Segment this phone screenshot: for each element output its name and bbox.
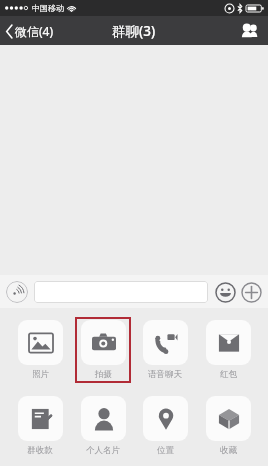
button[interactable]: Voice input: [6, 281, 28, 303]
staticText: 收藏: [220, 445, 237, 456]
staticText: 红包: [220, 369, 237, 380]
button[interactable]: 位置: [137, 393, 193, 459]
button[interactable]: 群收款: [12, 393, 68, 459]
button[interactable]: 语音聊天: [137, 317, 193, 383]
staticText: 个人名片: [86, 445, 120, 456]
button[interactable]: 个人名片: [75, 393, 131, 459]
staticText: 中国移动: [32, 3, 64, 13]
staticText: 群聊(3): [112, 22, 156, 40]
staticText: 群收款: [27, 445, 53, 456]
button[interactable]: 红包: [200, 317, 256, 383]
staticText: 位置: [157, 445, 174, 456]
button[interactable]: More: [240, 281, 262, 303]
button[interactable]: Group members: [231, 18, 268, 43]
button[interactable]: 照片: [12, 317, 68, 383]
button[interactable]: 收藏: [200, 393, 256, 459]
staticText: 拍摄: [95, 369, 112, 380]
button[interactable]: [34, 281, 208, 303]
staticText: 微信(4): [15, 23, 54, 39]
staticText: 照片: [32, 369, 49, 380]
button[interactable]: 拍摄: [75, 317, 131, 383]
button[interactable]: Emoji: [214, 281, 236, 303]
button[interactable]: 微信(4): [0, 19, 62, 43]
staticText: 语音聊天: [148, 369, 182, 380]
